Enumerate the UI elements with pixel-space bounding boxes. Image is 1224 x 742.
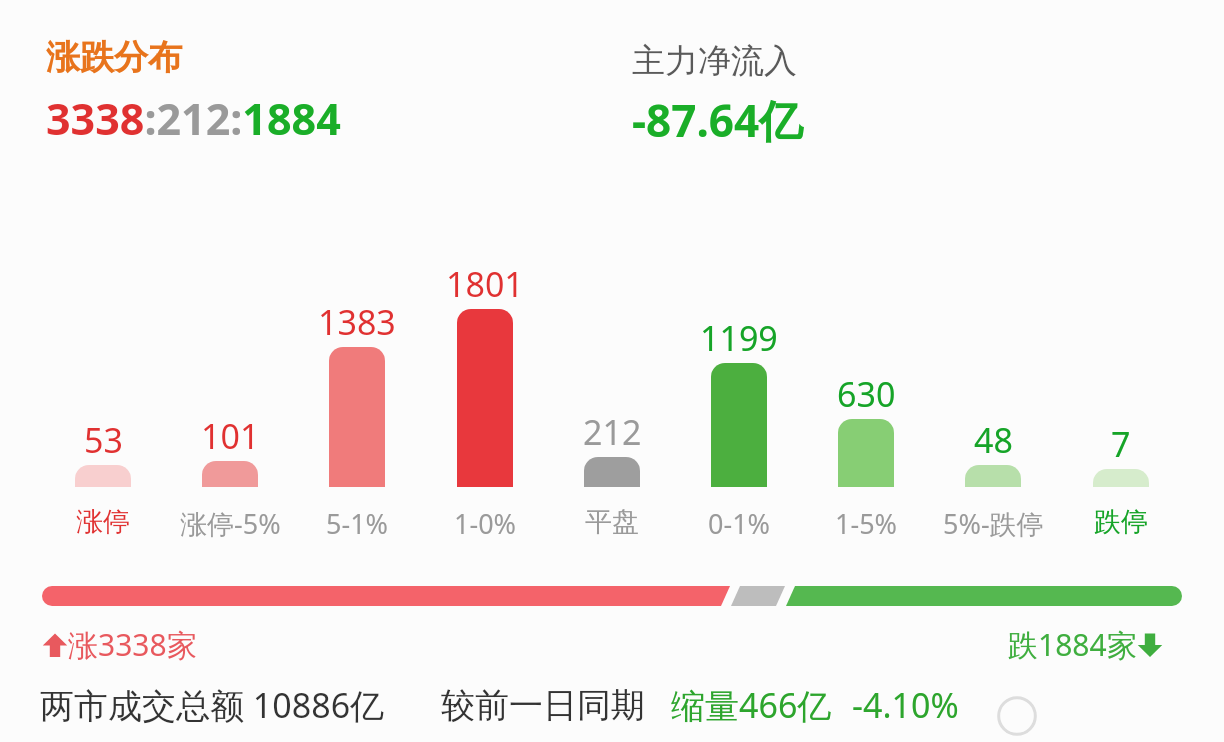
staticText: 53 [84, 417, 123, 463]
button[interactable]: 涨停-5% [160, 505, 300, 542]
button[interactable]: 跌停 [1051, 505, 1191, 539]
other: 跌 [1137, 630, 1163, 660]
button[interactable]: 5%-跌停 48 [965, 465, 1021, 487]
button[interactable]: 涨停 [33, 505, 173, 539]
button[interactable]: 1-0% 1801 [457, 309, 513, 487]
button[interactable]: 1-0% [415, 505, 555, 542]
staticText: 7 [1111, 421, 1131, 467]
staticText: 主力净流入 [632, 40, 797, 82]
button[interactable]: 涨停 53 [75, 465, 131, 487]
button[interactable]: 涨跌分布 [46, 36, 182, 79]
staticText: 212 [583, 409, 642, 455]
staticText: 101 [201, 413, 260, 459]
staticText: 630 [837, 371, 896, 417]
button[interactable]: 跌停 7 [1093, 469, 1149, 487]
staticText: 1199 [700, 315, 778, 361]
button[interactable]: 涨跌比例 [42, 586, 1182, 606]
staticText: 平盘 [585, 505, 639, 539]
button[interactable]: 5-1% 1383 [329, 347, 385, 487]
button[interactable]: 0-1% 1199 [711, 363, 767, 487]
staticText: 1-0% [454, 505, 517, 542]
staticText: 跌停 [1094, 505, 1148, 539]
button[interactable]: 1-5% 630 [838, 419, 894, 487]
button[interactable]: 平盘 212 [584, 457, 640, 487]
staticText: 涨停 [76, 505, 130, 539]
staticText: 涨停-5% [180, 505, 281, 542]
staticText: 1-5% [835, 505, 898, 542]
other: 涨 [42, 630, 68, 660]
staticText: 48 [974, 417, 1013, 463]
staticText: 0-1% [708, 505, 771, 542]
button[interactable]: 平盘 [542, 505, 682, 539]
staticText: 两市成交总额 10886亿 [40, 682, 385, 728]
staticText: -4.10% [852, 682, 959, 728]
staticText: 涨3338家 [68, 624, 197, 665]
staticText: 5-1% [326, 505, 389, 542]
button[interactable]: 5%-跌停 [923, 505, 1063, 542]
button[interactable]: 0-1% [669, 505, 809, 542]
staticText: 缩量466亿 [671, 682, 832, 728]
staticText: 1801 [446, 261, 524, 307]
button[interactable]: 涨停-5% 101 [202, 461, 258, 487]
staticText: 较前一日同期 [441, 684, 645, 727]
staticText: -87.64亿 [632, 90, 804, 150]
staticText: 3338:212:1884 [46, 89, 341, 148]
staticText: 1383 [318, 299, 396, 345]
button[interactable]: 1-5% [796, 505, 936, 542]
staticText: 5%-跌停 [943, 505, 1044, 542]
button[interactable]: 5-1% [287, 505, 427, 542]
staticText: 跌1884家 [1008, 624, 1137, 665]
